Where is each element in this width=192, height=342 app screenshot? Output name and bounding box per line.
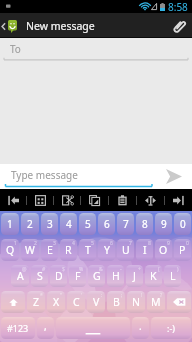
button[interactable]: V [87, 291, 105, 313]
button[interactable]: Shift [1, 291, 25, 313]
staticText: X [53, 295, 60, 309]
staticText: I [143, 243, 147, 257]
staticText: U [122, 243, 130, 257]
staticText: T [85, 243, 91, 257]
button[interactable]: 5 [79, 213, 96, 235]
button[interactable]: 2 [21, 213, 39, 235]
staticText: 1 [7, 217, 13, 231]
staticText: C [73, 295, 80, 309]
staticText: ( [158, 266, 160, 273]
button[interactable]: 9 [155, 213, 172, 235]
button[interactable]: Navigate up [0, 19, 99, 33]
button[interactable]: 4 [60, 213, 77, 235]
button[interactable]: 8 [136, 213, 153, 235]
button[interactable]: D [50, 265, 67, 287]
staticText: Z [33, 295, 40, 309]
button[interactable]: Move to end [165, 189, 192, 211]
button[interactable]: Keyboard layout [27, 189, 53, 211]
button[interactable]: H [107, 265, 124, 287]
button[interactable]: G [88, 265, 105, 287]
button[interactable]: P [174, 239, 191, 261]
staticText: 6 [110, 240, 113, 247]
staticText: 3 [47, 217, 53, 231]
button[interactable]: Z [27, 291, 45, 313]
staticText: : [101, 292, 103, 299]
button[interactable]: B [107, 291, 125, 313]
staticText: . [139, 319, 142, 333]
staticText: Q [6, 243, 15, 257]
staticText: R [65, 243, 72, 257]
button[interactable]: T [79, 239, 96, 261]
staticText: ! [141, 292, 143, 299]
button[interactable]: F [69, 265, 86, 287]
button[interactable]: Q [1, 239, 19, 261]
button[interactable]: Move to start [0, 189, 26, 211]
staticText: 8:58 [168, 0, 188, 13]
staticText: 9 [167, 240, 170, 247]
button[interactable]: R [60, 239, 77, 261]
staticText: 8 [142, 217, 148, 231]
staticText: % [79, 266, 84, 273]
staticText: 4 [66, 217, 72, 231]
staticText: V [93, 295, 100, 309]
button[interactable]: Space [56, 317, 130, 339]
staticText: 2 [34, 240, 37, 247]
button[interactable]: O [155, 239, 172, 261]
button[interactable]: K [145, 265, 162, 287]
staticText: D [55, 269, 63, 283]
button[interactable]: 0 [174, 213, 191, 235]
staticText: " [60, 292, 63, 299]
button[interactable]: Backspace [167, 291, 191, 313]
button[interactable]: U [117, 239, 134, 261]
staticText: K [150, 269, 157, 283]
staticText: @ [22, 266, 27, 273]
staticText: $ [62, 266, 65, 273]
button[interactable]: S [31, 265, 48, 287]
button[interactable]: M [147, 291, 165, 313]
button[interactable]: X [47, 291, 65, 313]
staticText: H [112, 269, 120, 283]
button[interactable]: Send [156, 164, 192, 189]
button[interactable]: Attach [167, 13, 192, 38]
button[interactable]: Y [98, 239, 115, 261]
staticText: 5 [91, 240, 94, 247]
staticText: ) [177, 266, 179, 273]
staticText: 5 [85, 217, 91, 231]
staticText: P [179, 243, 186, 257]
button[interactable]: W [21, 239, 39, 261]
button[interactable]: Period [132, 317, 149, 339]
button[interactable]: Paste [109, 189, 136, 211]
staticText: M [151, 295, 161, 309]
staticText: F [75, 269, 81, 283]
staticText: & [99, 266, 103, 273]
staticText: 1 [14, 240, 17, 247]
button[interactable]: 6 [98, 213, 115, 235]
staticText: L [170, 269, 176, 283]
staticText: #123 [7, 322, 29, 334]
button[interactable]: Emoji [151, 317, 191, 339]
button[interactable]: N [127, 291, 145, 313]
button[interactable]: Comma [37, 317, 54, 339]
button[interactable]: #123 [1, 317, 35, 339]
staticText: 0 [186, 240, 189, 247]
button[interactable]: 3 [41, 213, 58, 235]
button[interactable]: A [11, 265, 29, 287]
button[interactable]: 1 [1, 213, 19, 235]
button[interactable]: C [67, 291, 85, 313]
button[interactable]: E [41, 239, 58, 261]
button[interactable]: Select text [137, 189, 164, 211]
staticText: 9 [161, 217, 167, 231]
button[interactable]: L [164, 265, 181, 287]
button[interactable]: J [126, 265, 143, 287]
staticText: New message [26, 19, 95, 33]
staticText: , [44, 319, 47, 333]
button[interactable]: 7 [117, 213, 134, 235]
staticText: G [93, 269, 101, 283]
staticText: 6 [104, 217, 110, 231]
staticText: W [25, 243, 35, 257]
button[interactable]: Cut [54, 189, 80, 211]
button[interactable]: To [0, 38, 192, 61]
button[interactable]: Copy [81, 189, 108, 211]
button[interactable]: I [136, 239, 153, 261]
staticText: J [133, 269, 136, 283]
